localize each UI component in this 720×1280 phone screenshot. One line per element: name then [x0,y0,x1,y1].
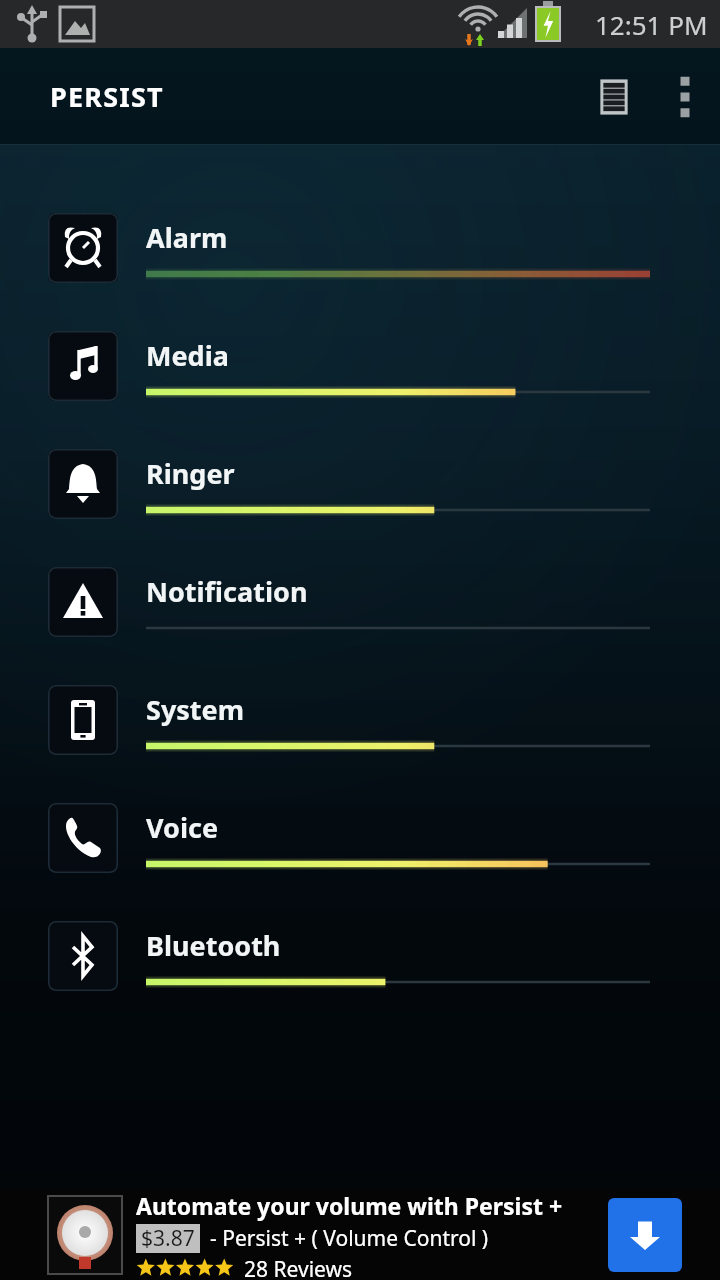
button[interactable]: Install [608,1198,682,1272]
staticText: Alarm [146,219,228,256]
button[interactable]: Automate your volume with Persist + [0,1190,720,1280]
button[interactable]: More options [650,62,720,132]
button[interactable]: Media [0,323,720,418]
button[interactable]: Bluetooth [0,913,720,1008]
staticText: PERSIST [50,78,164,115]
staticText: System [146,691,245,728]
staticText: 28 Reviews [244,1255,353,1280]
staticText: Automate your volume with Persist + [136,1190,563,1221]
staticText: Ringer [146,455,235,492]
staticText: - Persist + ( Volume Control ) [210,1224,489,1253]
staticText: $3.87 [141,1224,195,1253]
staticText: Media [146,337,229,374]
button[interactable]: Voice [0,795,720,890]
button[interactable]: Presets list [578,61,650,133]
staticText: Notification [146,573,308,610]
staticText: Bluetooth [146,927,281,964]
button[interactable]: Ringer [0,441,720,536]
button[interactable]: System [0,677,720,772]
staticText: 12:51 PM [595,7,708,42]
staticText: Voice [146,809,219,846]
button[interactable]: Notification [0,559,720,654]
button[interactable]: Alarm [0,205,720,300]
